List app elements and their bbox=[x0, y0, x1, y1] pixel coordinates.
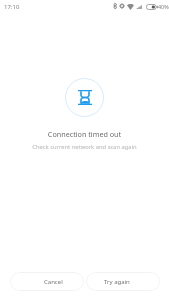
staticText: 17:10 bbox=[4, 3, 20, 11]
staticText: Try again bbox=[104, 278, 130, 286]
staticText: Connection timed out bbox=[0, 129, 169, 139]
staticText: Check current network and scan again bbox=[0, 143, 169, 151]
button[interactable]: Try again bbox=[86, 272, 160, 291]
staticText: 40% bbox=[158, 3, 169, 10]
staticText: Cancel bbox=[44, 278, 63, 286]
button[interactable]: Cancel bbox=[10, 272, 84, 291]
